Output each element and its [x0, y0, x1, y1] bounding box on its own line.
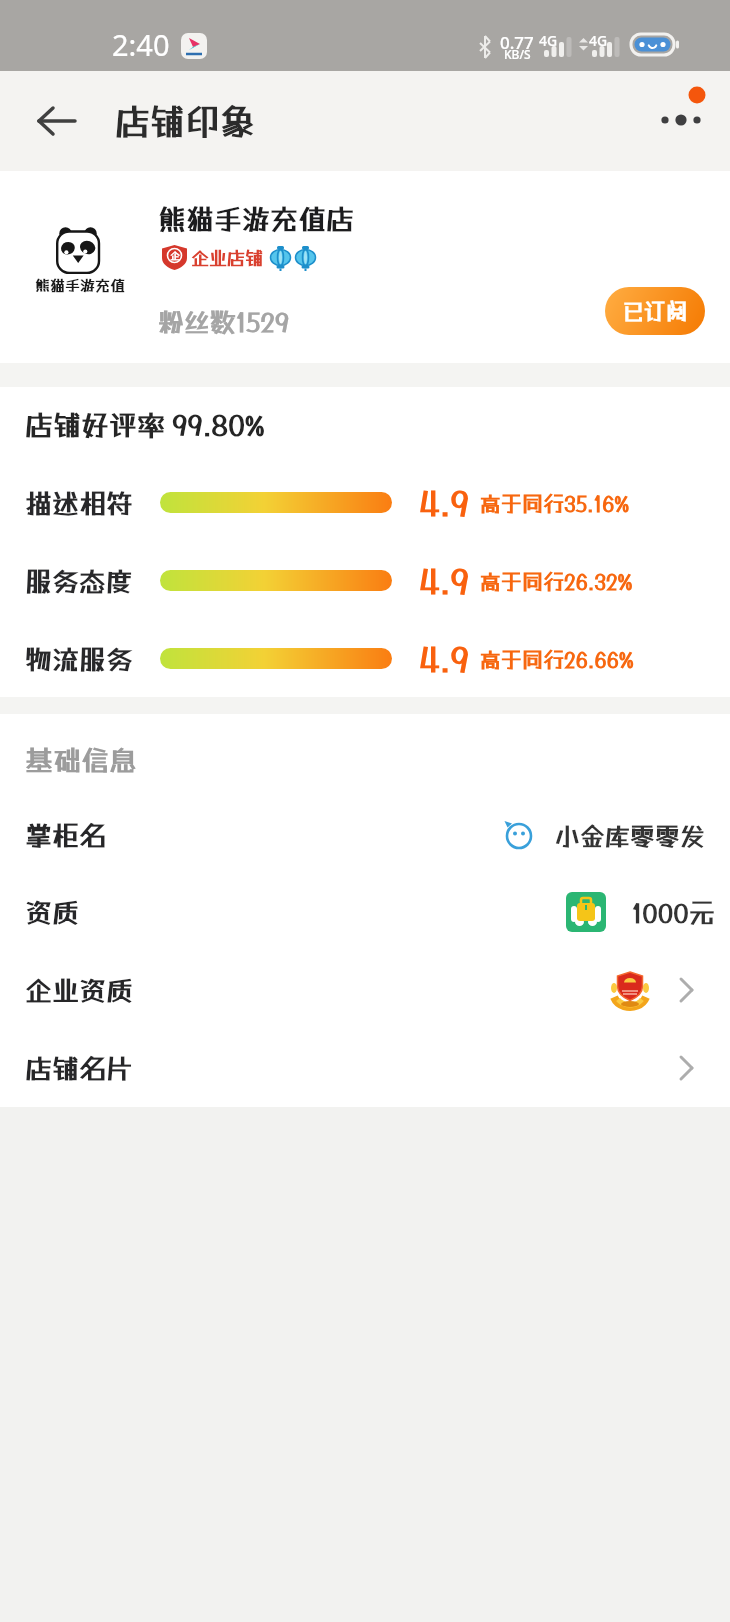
- staticText: 粉丝数1529: [158, 306, 289, 337]
- staticText: 高于同行26.66%: [480, 647, 634, 672]
- button[interactable]: [645, 76, 715, 136]
- staticText: 4.9: [419, 483, 469, 523]
- staticText: 店铺名片: [25, 1052, 133, 1084]
- staticText: 熊猫手游充值: [35, 276, 126, 294]
- staticText: 企业店铺: [191, 247, 263, 268]
- button[interactable]: 企业资质: [0, 960, 730, 1020]
- button[interactable]: 掌柜名: [0, 805, 730, 865]
- staticText: 4.9: [419, 561, 469, 601]
- staticText: 店铺印象: [115, 101, 256, 142]
- staticText: 描述相符: [25, 487, 133, 519]
- staticText: 1000元: [632, 897, 715, 928]
- button[interactable]: [30, 94, 84, 148]
- staticText: 2:40: [112, 25, 170, 64]
- staticText: 0.77: [500, 31, 534, 49]
- staticText: 企: [170, 250, 180, 262]
- staticText: 掌柜名: [25, 819, 106, 851]
- staticText: 熊猫手游充值店: [158, 203, 355, 236]
- staticText: 基础信息: [25, 744, 138, 777]
- staticText: 已订阅: [622, 298, 689, 324]
- staticText: 4G: [589, 31, 608, 47]
- staticText: 高于同行35.16%: [480, 491, 630, 516]
- staticText: 小金库零零发: [555, 821, 706, 850]
- button[interactable]: 资质: [0, 882, 730, 942]
- staticText: 服务态度: [25, 565, 133, 597]
- staticText: 高于同行26.32%: [480, 569, 633, 594]
- staticText: 物流服务: [25, 643, 133, 675]
- staticText: 4G: [539, 31, 558, 47]
- staticText: 企业资质: [25, 974, 133, 1006]
- button[interactable]: 店铺名片: [0, 1038, 730, 1098]
- staticText: KB/S: [504, 46, 531, 62]
- staticText: 店铺好评率 99.80%: [25, 409, 265, 442]
- staticText: 4.9: [419, 639, 469, 679]
- button[interactable]: 已订阅: [605, 287, 705, 335]
- staticText: 资质: [25, 896, 79, 928]
